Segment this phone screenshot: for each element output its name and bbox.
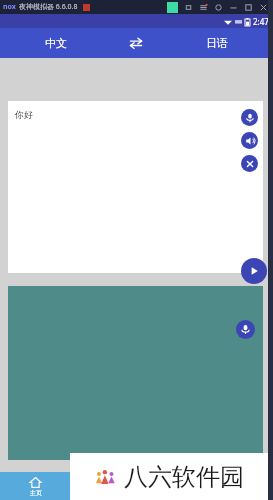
staticText: nox xyxy=(3,2,16,12)
staticText: 你好 xyxy=(15,109,33,120)
staticText: 日语 xyxy=(206,36,228,50)
staticText: 夜神模拟器 6.6.0.8 xyxy=(19,2,78,12)
staticText: 主页 xyxy=(30,489,42,497)
button[interactable]: close xyxy=(259,3,268,12)
button[interactable]: Speaker xyxy=(241,132,258,149)
staticText: 八六软件园 xyxy=(124,462,244,492)
button[interactable]: Microphone xyxy=(236,320,255,339)
button[interactable]: Microphone xyxy=(241,109,258,126)
staticText: 中文 xyxy=(45,36,67,50)
button[interactable]: Swap languages xyxy=(111,28,161,58)
button[interactable]: keyboard xyxy=(184,3,193,12)
button[interactable]: 日语 xyxy=(161,28,273,58)
button[interactable]: minimize xyxy=(229,3,238,12)
button[interactable]: Clear xyxy=(241,155,258,172)
button[interactable]: Play xyxy=(241,258,267,284)
button[interactable]: 主页 xyxy=(0,472,70,500)
staticText: 2:47 xyxy=(253,16,269,27)
button[interactable]: 中文 xyxy=(0,28,111,58)
button[interactable]: menu xyxy=(199,3,208,12)
button[interactable]: maximize xyxy=(244,3,253,12)
button[interactable]: settings xyxy=(214,3,223,12)
